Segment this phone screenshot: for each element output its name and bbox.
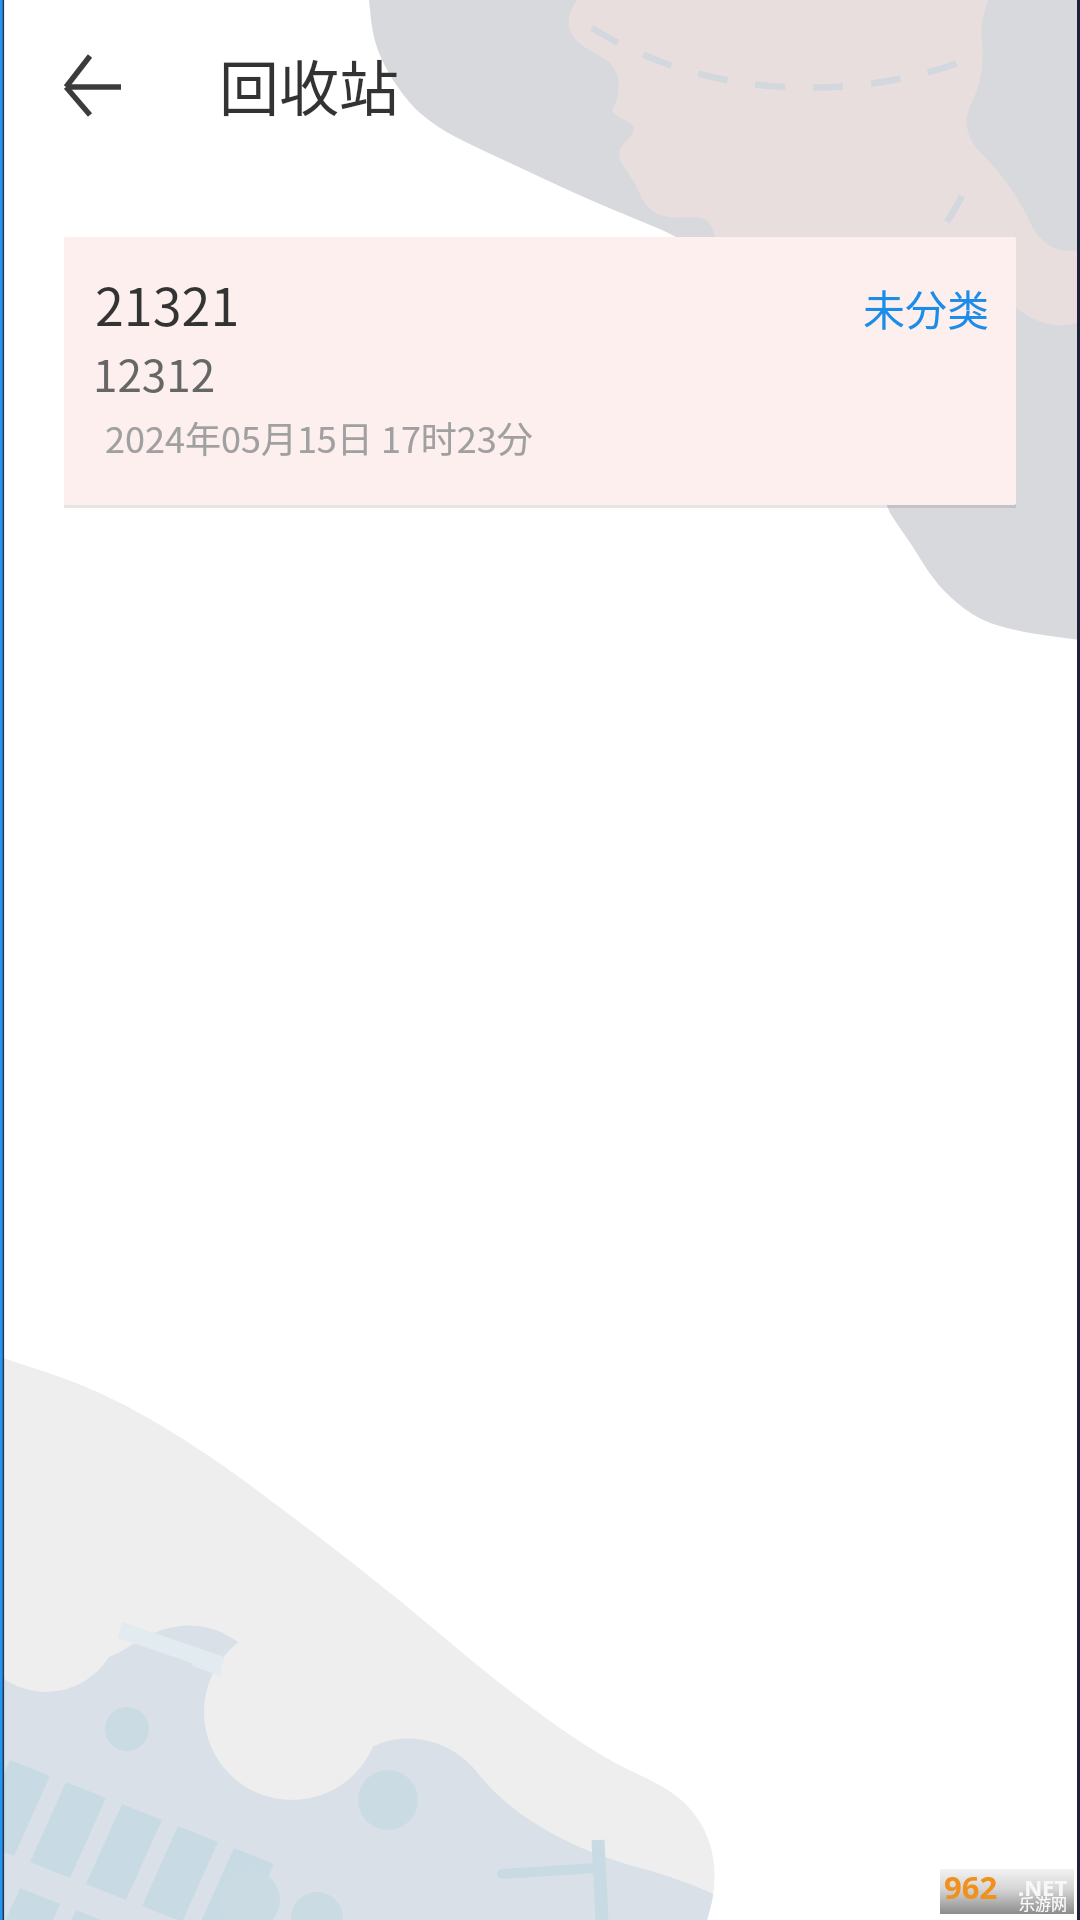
staticText: 回收站 [219, 41, 399, 128]
staticText: 2024年05月15日 17时23分 [105, 411, 533, 463]
staticText: 未分类 [863, 277, 990, 338]
button[interactable]: 21321 [64, 237, 1016, 505]
staticText: 21321 [95, 266, 240, 341]
staticText: .NET [1018, 1872, 1068, 1902]
staticText: 962 [944, 1866, 998, 1908]
staticText: 乐游网 [1019, 1891, 1068, 1914]
button[interactable]: Back [50, 43, 138, 131]
staticText: 12312 [93, 341, 216, 405]
